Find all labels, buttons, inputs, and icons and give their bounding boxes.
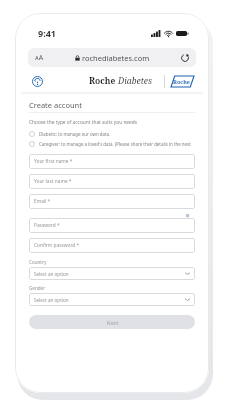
staticText: Confirm password *	[34, 242, 80, 249]
staticText: Roche	[89, 75, 116, 87]
button[interactable]: ᴀA	[28, 48, 196, 67]
staticText: Diabetes	[118, 75, 152, 87]
staticText: Password *	[34, 222, 60, 229]
staticText: Country	[29, 259, 47, 265]
staticText: Caregiver: to manage a loved's data. (Pl…	[39, 141, 195, 147]
button[interactable]: Select an option	[29, 267, 195, 280]
staticText: rochediabetes.com	[82, 53, 150, 63]
staticText: Your last name *	[34, 178, 72, 185]
staticText: ᴀA	[35, 53, 44, 63]
button[interactable]: Your last name *	[29, 174, 195, 189]
button[interactable]: Roche logo	[169, 74, 195, 88]
staticText: Create account	[29, 100, 82, 110]
staticText: Your first name *	[34, 158, 73, 165]
staticText: Roche	[173, 78, 191, 85]
button[interactable]: Email *	[29, 194, 195, 209]
button[interactable]: Your first name *	[29, 154, 195, 169]
staticText: Select an option	[34, 297, 69, 303]
button[interactable]: Reload page	[179, 52, 190, 63]
button[interactable]: Caregiver: to manage a loved's data. (Pl…	[29, 141, 195, 147]
button[interactable]: Next	[29, 315, 195, 329]
button[interactable]: Diabetic: to manage our own data.	[29, 131, 195, 137]
staticText: Next	[106, 319, 119, 326]
staticText: Choose the type of account that suits yo…	[29, 119, 138, 126]
staticText: Email *	[34, 198, 51, 205]
button[interactable]: Help	[30, 74, 45, 89]
button[interactable]: Confirm password *	[29, 238, 195, 253]
button[interactable]: Select an option	[29, 293, 195, 306]
staticText: Gender	[29, 285, 46, 291]
staticText: Select an option	[34, 271, 69, 277]
staticText: Diabetic: to manage our own data.	[39, 131, 111, 137]
button[interactable]: Password *	[29, 218, 195, 233]
staticText: 9:41	[38, 27, 56, 39]
